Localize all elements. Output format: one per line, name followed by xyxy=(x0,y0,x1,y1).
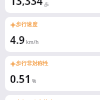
staticText: 0.51 xyxy=(10,72,31,86)
staticText: 歩行両脚支持時間 xyxy=(16,99,60,100)
button[interactable]: 歩行非対称性 xyxy=(5,56,100,91)
staticText: 4.9 xyxy=(10,33,25,47)
button[interactable]: 歩行速度 xyxy=(5,17,100,52)
staticText: % xyxy=(32,78,37,85)
staticText: 13,334 xyxy=(10,0,43,8)
staticText: 歩 xyxy=(44,1,49,7)
button[interactable]: 歩数 xyxy=(5,0,100,13)
button[interactable]: 歩行両脚支持時間 xyxy=(5,95,100,100)
staticText: 歩行非対称性 xyxy=(16,60,49,67)
staticText: 歩行速度 xyxy=(16,21,38,28)
staticText: km/h xyxy=(26,39,39,46)
